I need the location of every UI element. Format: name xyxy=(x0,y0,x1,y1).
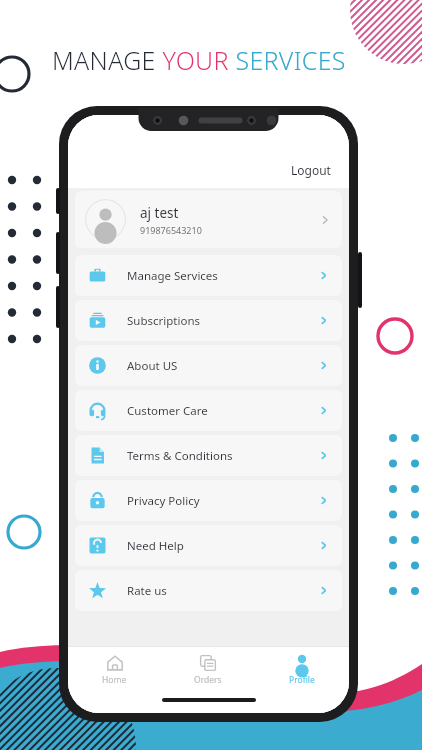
staticText: Need Help xyxy=(127,538,184,554)
button[interactable]: Logout xyxy=(287,159,335,181)
staticText: Rate us xyxy=(127,583,167,599)
staticText: aj test xyxy=(140,204,179,222)
button[interactable]: Privacy Policy xyxy=(75,480,342,521)
staticText: 919876543210 xyxy=(140,224,202,236)
staticText: Profile xyxy=(289,674,315,686)
staticText: Privacy Policy xyxy=(127,493,200,509)
button[interactable]: Terms & Conditions xyxy=(75,435,342,476)
staticText: Customer Care xyxy=(127,403,208,419)
button[interactable]: Rate us xyxy=(75,570,342,611)
staticText: Orders xyxy=(194,674,222,686)
button[interactable]: Customer Care xyxy=(75,390,342,431)
button[interactable]: Manage Services xyxy=(75,255,342,296)
button[interactable]: Profile xyxy=(255,647,349,693)
staticText: Home xyxy=(102,674,127,686)
staticText: MANAGE YOUR SERVICES xyxy=(52,43,346,77)
button[interactable]: Subscriptions xyxy=(75,300,342,341)
button[interactable]: Orders xyxy=(161,647,255,693)
button[interactable]: aj test xyxy=(75,191,342,248)
button[interactable]: About US xyxy=(75,345,342,386)
staticText: Terms & Conditions xyxy=(127,448,233,464)
staticText: Subscriptions xyxy=(127,313,201,329)
staticText: Logout xyxy=(291,162,331,178)
button[interactable]: Need Help xyxy=(75,525,342,566)
staticText: Manage Services xyxy=(127,268,218,284)
staticText: About US xyxy=(127,358,178,374)
button[interactable]: Home xyxy=(68,647,161,693)
